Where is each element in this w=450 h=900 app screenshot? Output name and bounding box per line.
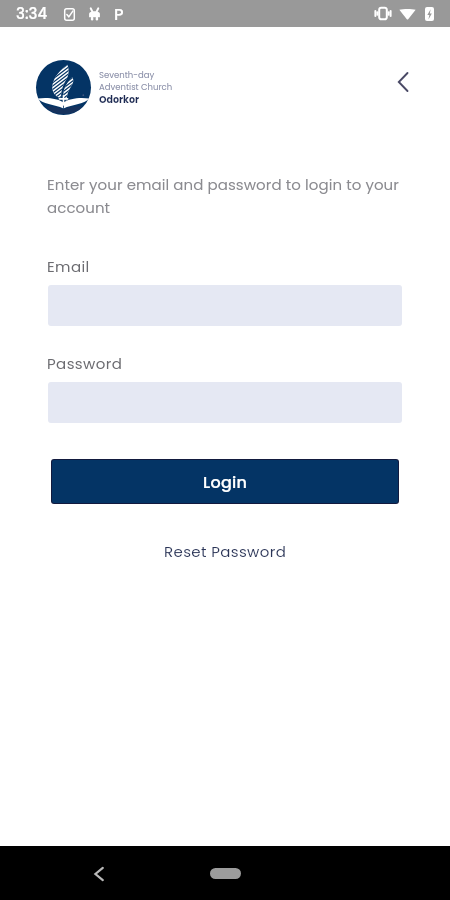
staticText: Password [47, 353, 123, 374]
staticText: 3:34 [16, 3, 48, 24]
staticText: P [114, 3, 124, 25]
staticText: Odorkor [99, 93, 140, 106]
staticText: Seventh-day [99, 69, 155, 81]
button[interactable]: Back [383, 62, 423, 102]
staticText: Enter your email and password to login t… [47, 174, 405, 218]
staticText: Login [203, 471, 248, 493]
staticText: Email [47, 256, 90, 277]
button[interactable]: Reset Password [154, 537, 297, 566]
staticText: Adventist Church [99, 81, 173, 93]
button[interactable]: Back [83, 858, 115, 890]
button[interactable]: Login [52, 460, 398, 503]
button[interactable]: Home [210, 868, 241, 879]
